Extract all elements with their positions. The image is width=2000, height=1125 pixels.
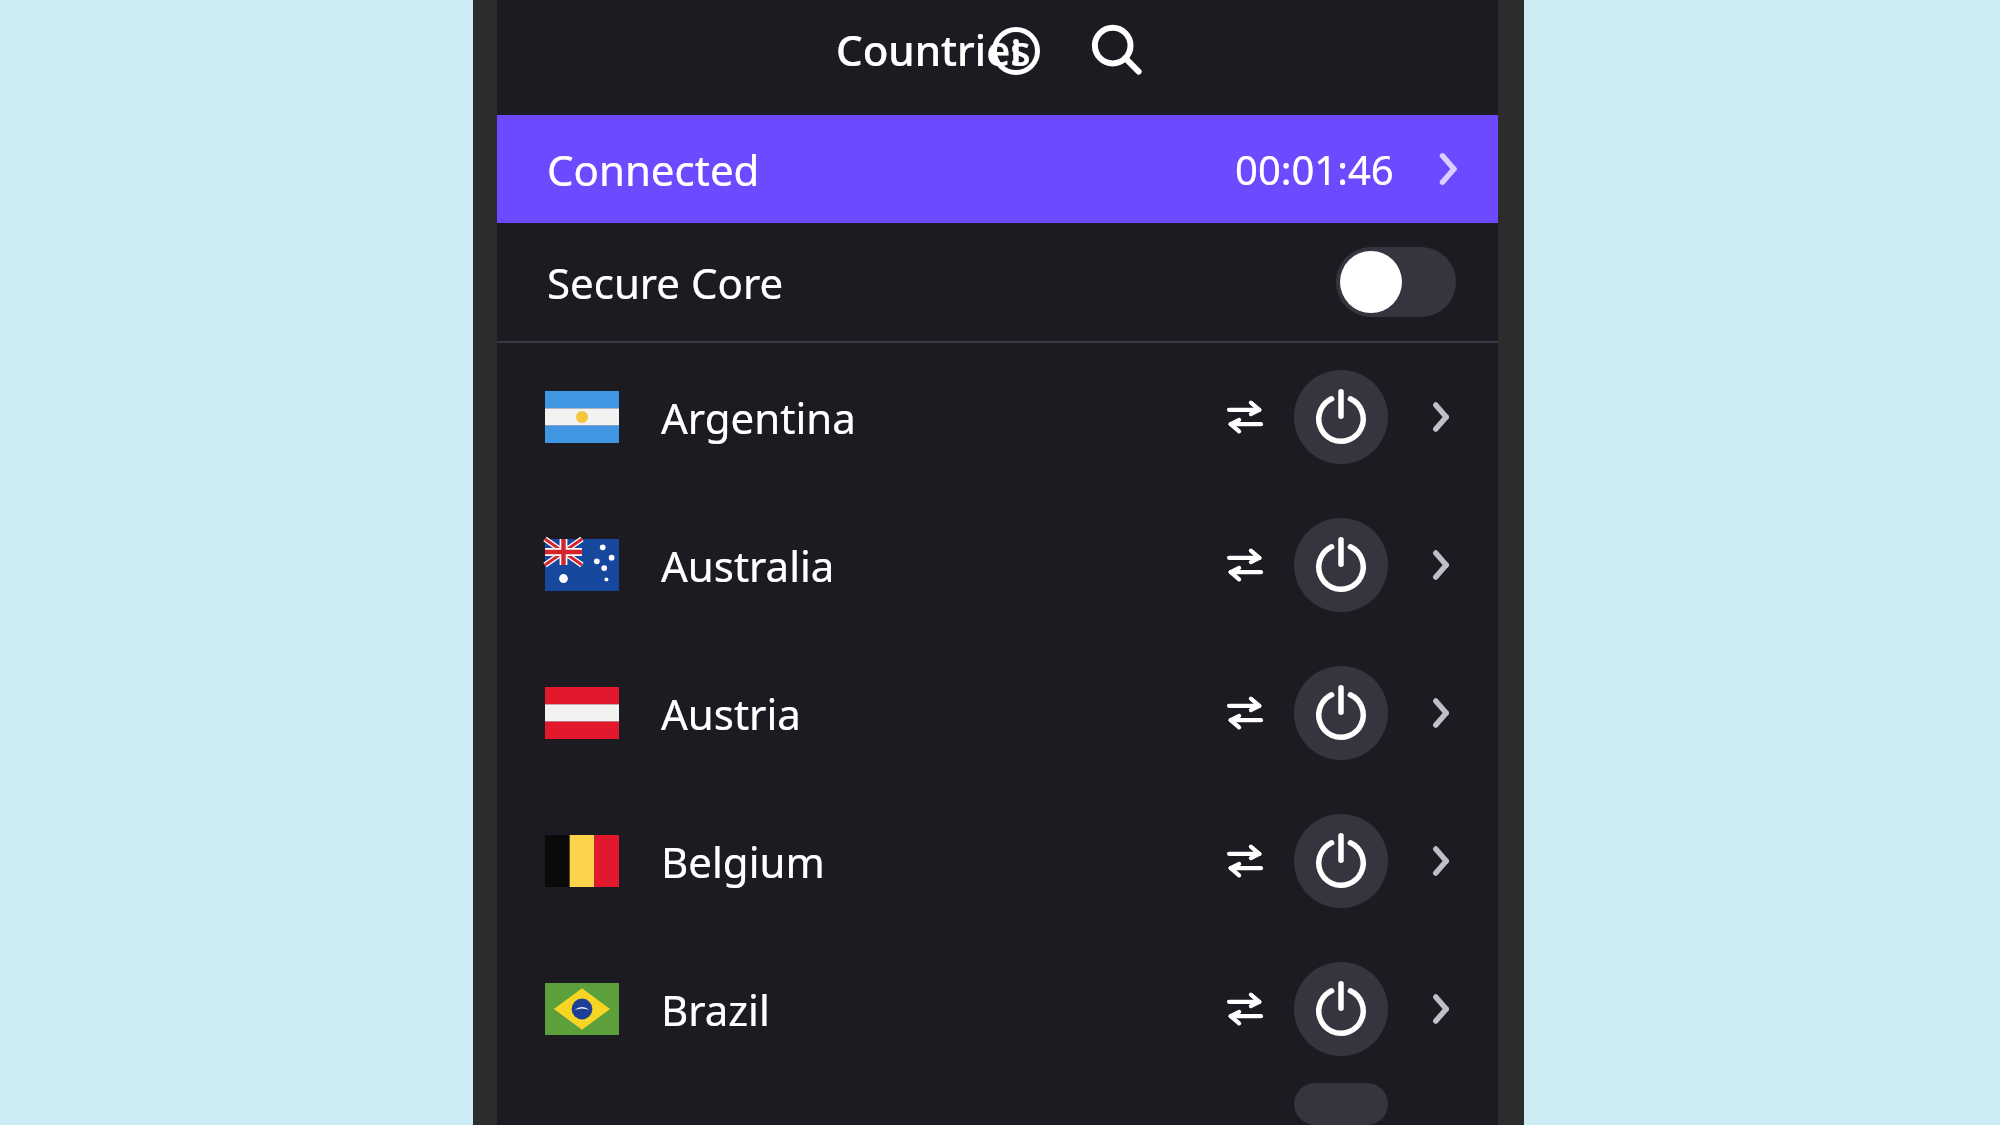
staticText: Austria: [661, 685, 801, 742]
button[interactable]: Brazil: [497, 935, 1498, 1083]
button[interactable]: Details: [1404, 678, 1474, 748]
staticText: 00:01:46: [1235, 142, 1394, 196]
staticText: Brazil: [661, 981, 770, 1038]
button[interactable]: Details: [1404, 826, 1474, 896]
button[interactable]: Details: [1404, 530, 1474, 600]
button[interactable]: Belgium: [497, 787, 1498, 935]
staticText: Secure Core: [547, 254, 784, 311]
button[interactable]: Connect: [1294, 666, 1388, 760]
button[interactable]: [497, 1083, 1498, 1125]
button[interactable]: Switch server: [1210, 382, 1280, 452]
button[interactable]: Search: [1072, 6, 1162, 96]
button[interactable]: Secure Core toggle: [1336, 247, 1456, 317]
button[interactable]: Argentina: [497, 343, 1498, 491]
button[interactable]: Switch server: [1210, 974, 1280, 1044]
button[interactable]: Details: [1404, 382, 1474, 452]
button[interactable]: Switch server: [1210, 678, 1280, 748]
button[interactable]: Details: [1404, 974, 1474, 1044]
button[interactable]: Secure Core: [497, 223, 1498, 341]
button[interactable]: Connect: [1294, 518, 1388, 612]
button[interactable]: Australia: [497, 491, 1498, 639]
staticText: Belgium: [661, 833, 825, 890]
staticText: Australia: [661, 537, 835, 594]
button[interactable]: Switch server: [1210, 530, 1280, 600]
staticText: Connected: [547, 141, 760, 198]
staticText: Argentina: [661, 389, 856, 446]
button[interactable]: Info: [971, 6, 1061, 96]
button[interactable]: Connect: [1294, 370, 1388, 464]
staticText: Countries: [836, 21, 1031, 78]
button[interactable]: Switch server: [1210, 826, 1280, 896]
button[interactable]: Connect: [1294, 962, 1388, 1056]
button[interactable]: Connected: [497, 115, 1498, 223]
button[interactable]: Austria: [497, 639, 1498, 787]
button[interactable]: Connect: [1294, 814, 1388, 908]
